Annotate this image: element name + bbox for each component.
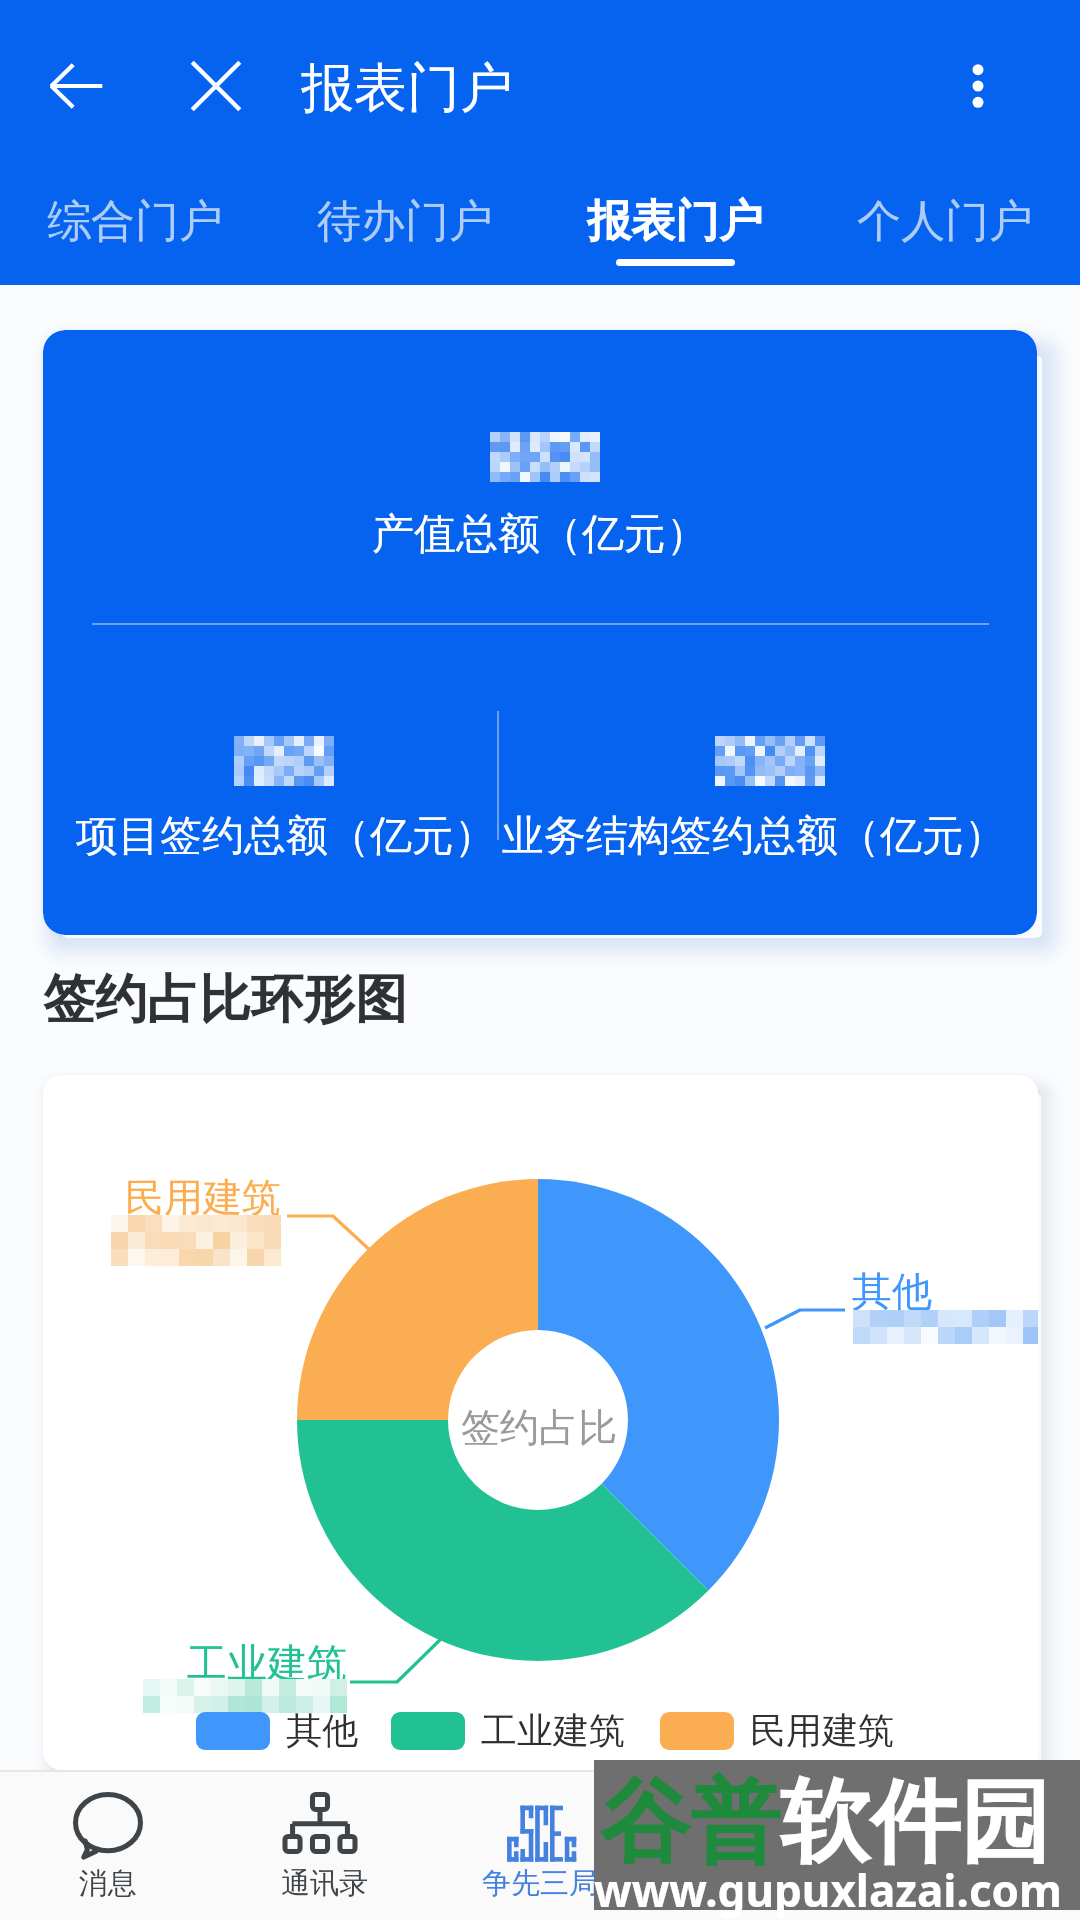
button[interactable]: More options xyxy=(930,38,1026,134)
staticText: 项目签约总额（亿元） xyxy=(76,810,496,863)
button[interactable]: CSCEC xyxy=(432,1770,648,1920)
staticText: 签约占比环形图 xyxy=(43,967,407,1033)
button[interactable]: 我 xyxy=(864,1770,1080,1920)
button[interactable]: Back xyxy=(28,38,124,134)
button[interactable]: 工作台 xyxy=(648,1770,864,1920)
staticText: 业务结构签约总额（亿元） xyxy=(502,810,1006,863)
button[interactable]: 通讯录 xyxy=(216,1770,432,1920)
staticText: 待办门户 xyxy=(317,194,493,249)
button[interactable]: 报表门户 xyxy=(540,194,810,266)
staticText: 其他 xyxy=(286,1708,358,1753)
staticText: 工业建筑 xyxy=(481,1708,625,1753)
other: CSCEC xyxy=(503,1792,577,1862)
staticText: www.gupuxlazai.com xyxy=(594,1860,1062,1920)
staticText: 通讯录 xyxy=(281,1865,368,1902)
staticText: 其他 xyxy=(852,1266,932,1316)
button[interactable]: 其他 xyxy=(196,1708,358,1753)
staticText: 综合门户 xyxy=(47,194,223,249)
staticText: 谷普 xyxy=(600,1766,780,1879)
button[interactable]: 民用建筑 xyxy=(660,1708,894,1753)
staticText: 民用建筑 xyxy=(125,1173,281,1222)
staticText: 报表门户 xyxy=(301,55,513,122)
button[interactable]: 工业建筑 xyxy=(391,1708,625,1753)
button[interactable]: 个人门户 xyxy=(810,194,1080,266)
staticText: 报表门户 xyxy=(587,194,763,249)
staticText: 个人门户 xyxy=(857,194,1033,249)
button[interactable]: 综合门户 xyxy=(0,194,270,266)
button[interactable]: 产值总额（亿元） xyxy=(43,330,1037,935)
staticText: 工业建筑 xyxy=(187,1638,347,1688)
button[interactable]: 消息 xyxy=(0,1770,216,1920)
button[interactable]: Close xyxy=(168,38,264,134)
staticText: 工作台 xyxy=(713,1865,800,1902)
staticText: 争先三局 xyxy=(482,1865,598,1902)
staticText: 民用建筑 xyxy=(750,1708,894,1753)
staticText: 软件园 xyxy=(780,1766,1050,1879)
staticText: 签约占比 xyxy=(461,1403,617,1452)
staticText: 消息 xyxy=(79,1865,137,1902)
button[interactable]: 待办门户 xyxy=(270,194,540,266)
staticText: 产值总额（亿元） xyxy=(43,508,1037,561)
staticText: 我 xyxy=(958,1865,987,1902)
